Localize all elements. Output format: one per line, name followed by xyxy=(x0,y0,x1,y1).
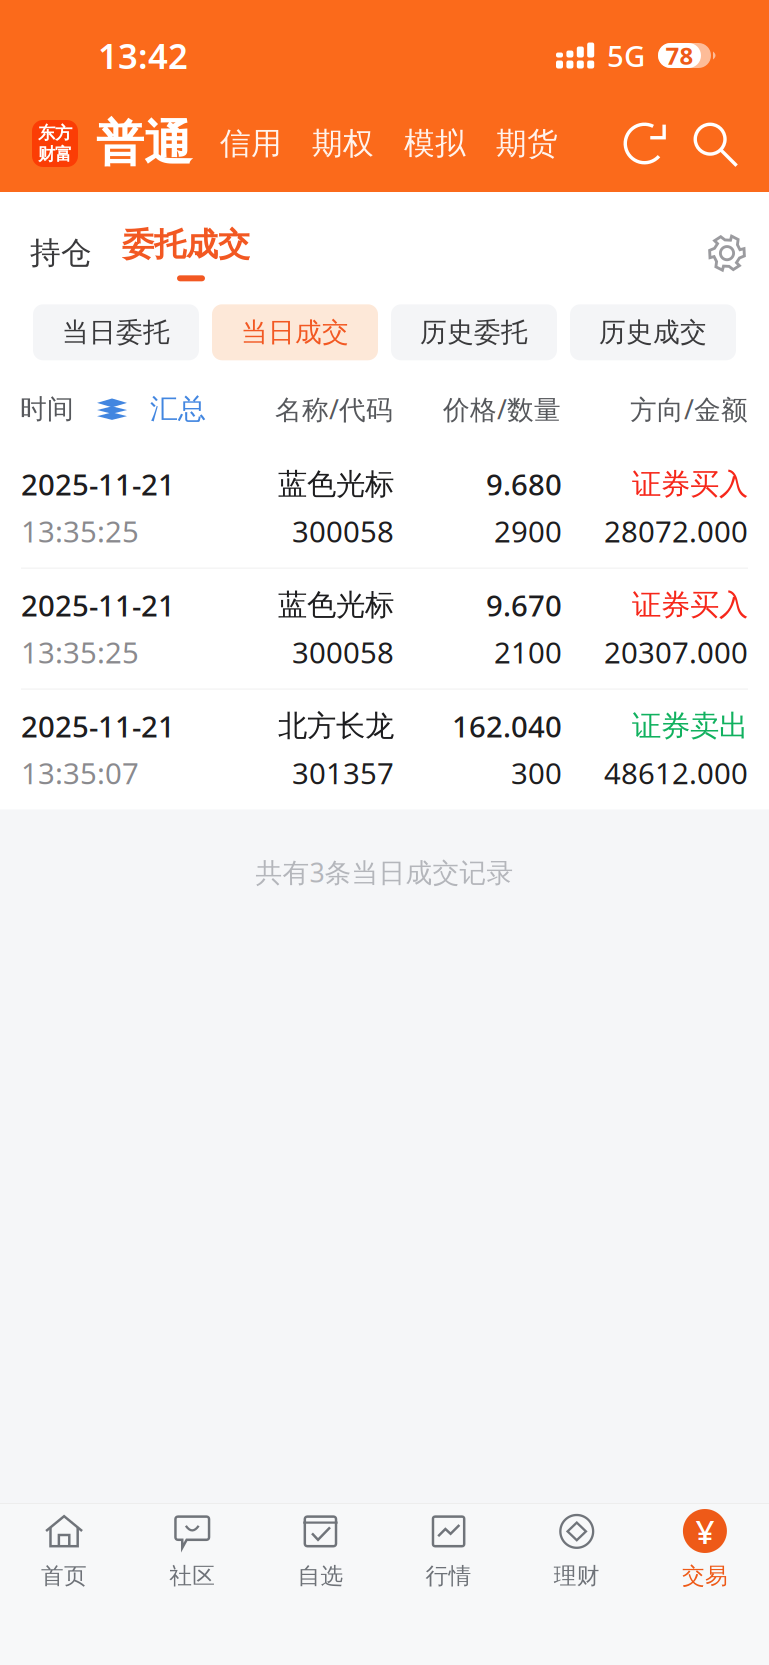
staticText: 交易 xyxy=(682,1562,728,1590)
staticText: 共有3条当日成交记录 xyxy=(255,854,513,890)
button[interactable]: 信用 xyxy=(205,115,297,172)
button[interactable]: Settings xyxy=(707,233,747,273)
staticText: 2025-11-21 xyxy=(21,465,175,504)
staticText: 2900 xyxy=(494,512,562,551)
button[interactable]: 历史委托 xyxy=(391,304,557,360)
button[interactable]: 首页 xyxy=(0,1508,128,1590)
staticText: 2025-11-21 xyxy=(21,706,175,745)
staticText: 价格/数量 xyxy=(443,391,561,427)
staticText: 信用 xyxy=(220,125,282,162)
staticText: 300058 xyxy=(292,512,394,551)
button[interactable]: 2025-11-21 xyxy=(0,689,769,809)
staticText: 东方 xyxy=(38,122,72,143)
staticText: 13:35:25 xyxy=(21,633,139,672)
button[interactable]: 理财 xyxy=(513,1508,641,1590)
staticText: 28072.000 xyxy=(604,512,748,551)
button[interactable]: 历史成交 xyxy=(570,304,736,360)
staticText: 方向/金额 xyxy=(630,391,748,427)
staticText: 汇总 xyxy=(150,392,206,426)
staticText: 北方长龙 xyxy=(278,708,394,744)
staticText: 301357 xyxy=(292,753,394,792)
staticText: 证券买入 xyxy=(632,466,748,502)
staticText: 13:35:07 xyxy=(21,753,139,792)
staticText: 13:35:25 xyxy=(21,512,139,551)
button[interactable]: 2025-11-21 xyxy=(0,569,769,688)
staticText: 名称/代码 xyxy=(275,391,393,427)
button[interactable]: 期权 xyxy=(297,115,389,172)
button[interactable]: 持仓 xyxy=(30,234,92,272)
staticText: 普通 xyxy=(96,114,192,173)
button[interactable]: 汇总 xyxy=(95,392,206,426)
staticText: 当日成交 xyxy=(241,316,349,349)
staticText: 78 xyxy=(665,40,693,71)
staticText: 时间 xyxy=(20,393,74,425)
staticText: 自选 xyxy=(297,1562,343,1590)
staticText: 9.680 xyxy=(486,465,562,504)
button[interactable]: ¥ xyxy=(641,1508,769,1590)
staticText: 2025-11-21 xyxy=(21,586,175,625)
button[interactable]: 期货 xyxy=(481,115,573,172)
staticText: 期权 xyxy=(312,125,374,162)
staticText: 300058 xyxy=(292,633,394,672)
staticText: ¥ xyxy=(695,1509,714,1553)
staticText: 48612.000 xyxy=(604,753,748,792)
button[interactable]: 行情 xyxy=(384,1508,513,1590)
staticText: 委托成交 xyxy=(122,225,250,264)
staticText: 期货 xyxy=(496,125,558,162)
staticText: 300 xyxy=(511,753,562,792)
button[interactable]: 自选 xyxy=(256,1508,384,1590)
button[interactable]: 当日成交 xyxy=(212,304,378,360)
staticText: 历史成交 xyxy=(599,316,707,349)
button[interactable]: 2025-11-21 xyxy=(0,448,769,568)
staticText: 蓝色光标 xyxy=(278,466,394,502)
button[interactable]: 委托成交 xyxy=(122,225,250,281)
staticText: 证券买入 xyxy=(632,587,748,623)
staticText: 5G xyxy=(607,36,645,75)
staticText: 13:42 xyxy=(98,32,188,78)
button[interactable]: Refresh xyxy=(617,112,675,174)
staticText: 历史委托 xyxy=(420,316,528,349)
staticText: 证券卖出 xyxy=(632,708,748,744)
staticText: 20307.000 xyxy=(604,633,748,672)
button[interactable]: 当日委托 xyxy=(33,304,199,360)
staticText: 蓝色光标 xyxy=(278,587,394,623)
staticText: 首页 xyxy=(41,1562,87,1590)
button[interactable]: 社区 xyxy=(128,1508,256,1590)
staticText: 162.040 xyxy=(452,706,562,745)
staticText: 行情 xyxy=(426,1562,472,1590)
button[interactable]: 模拟 xyxy=(389,115,481,172)
staticText: 当日委托 xyxy=(62,316,170,349)
staticText: 9.670 xyxy=(486,586,562,625)
staticText: 2100 xyxy=(494,633,562,672)
staticText: 财富 xyxy=(38,143,72,165)
staticText: 持仓 xyxy=(30,234,92,272)
button[interactable]: Search xyxy=(685,113,741,173)
staticText: 模拟 xyxy=(404,125,466,162)
staticText: 社区 xyxy=(169,1562,215,1590)
staticText: 理财 xyxy=(554,1562,600,1590)
